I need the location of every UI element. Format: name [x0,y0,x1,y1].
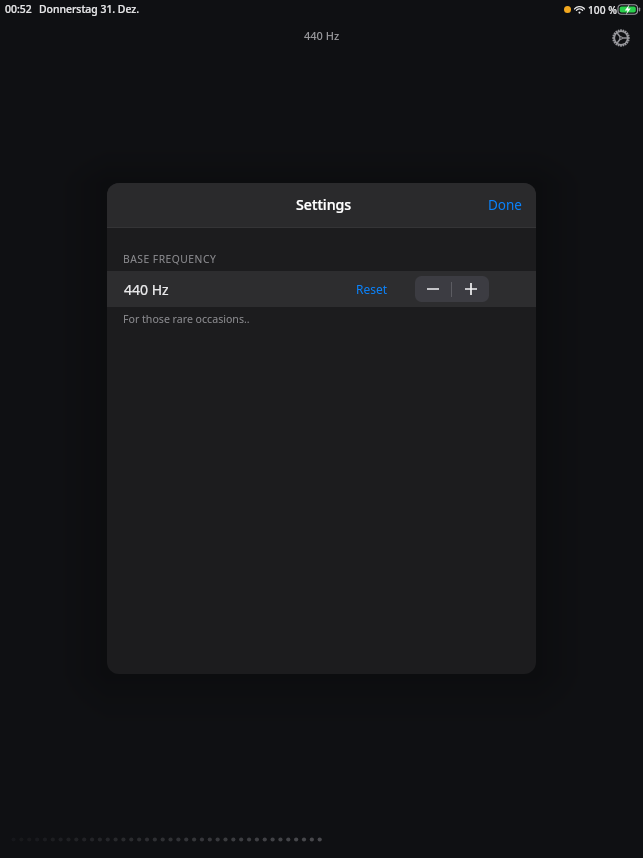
staticText: BASE FREQUENCY [123,252,217,266]
button[interactable]: Increase [452,276,489,302]
staticText: 100 % [588,3,617,17]
staticText: Donnerstag 31. Dez. [39,2,140,16]
staticText: Done [488,196,522,214]
button[interactable]: 440 Hz [107,271,536,307]
button[interactable]: Done [468,187,536,223]
staticText: Reset [356,281,388,297]
staticText: For those rare occasions.. [123,312,250,326]
staticText: 440 Hz [304,28,340,43]
button[interactable]: Settings [603,20,639,56]
staticText: 00:52 [5,2,32,16]
button[interactable]: Decrease [415,276,451,302]
button[interactable]: Reset [351,275,393,303]
staticText: Settings [296,195,352,214]
staticText: 440 Hz [124,280,169,299]
